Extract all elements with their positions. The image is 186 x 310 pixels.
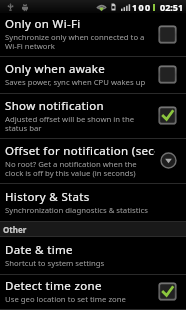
button[interactable]: Date & time bbox=[0, 237, 186, 275]
button[interactable]: Detect time zone bbox=[0, 275, 186, 310]
staticText: Only when awake bbox=[5, 61, 106, 77]
button[interactable]: Offset for notification (seconds) bbox=[0, 139, 186, 184]
staticText: Other bbox=[3, 224, 27, 235]
staticText: 100 bbox=[132, 1, 152, 13]
button[interactable]: Toggle bbox=[158, 282, 177, 301]
staticText: Shortcut to system settings bbox=[5, 258, 105, 269]
button[interactable]: Toggle bbox=[158, 65, 177, 84]
staticText: Synchronize only when connected to a Wi-… bbox=[5, 32, 145, 52]
staticText: Adjusted offset will be shown in the sta… bbox=[5, 114, 135, 134]
button[interactable]: Expand bbox=[160, 152, 177, 169]
button[interactable]: Toggle bbox=[158, 106, 177, 125]
staticText: Use geo location to set time zone bbox=[5, 294, 126, 305]
button[interactable]: Show notification bbox=[0, 94, 186, 139]
staticText: No root? Get a notification when the clo… bbox=[5, 159, 137, 179]
staticText: 02:51 bbox=[160, 1, 184, 13]
staticText: Date & time bbox=[5, 242, 73, 258]
button[interactable]: History & Stats bbox=[0, 184, 186, 222]
staticText: History & Stats bbox=[5, 189, 90, 205]
staticText: Detect time zone bbox=[5, 278, 102, 294]
staticText: Saves power, sync when CPU wakes up bbox=[5, 77, 146, 88]
button[interactable]: Only on Wi-Fi bbox=[0, 13, 186, 57]
button[interactable]: Toggle bbox=[158, 25, 177, 44]
staticText: Synchronization diagnostics & statistics bbox=[5, 205, 148, 216]
staticText: Show notification bbox=[5, 98, 105, 114]
staticText: Only on Wi-Fi bbox=[5, 16, 81, 32]
staticText: Offset for notification (seconds) bbox=[5, 143, 155, 159]
button[interactable]: Only when awake bbox=[0, 57, 186, 94]
